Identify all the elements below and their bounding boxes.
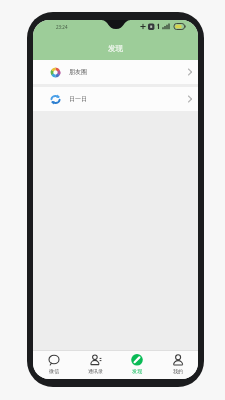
staticText: 23:24 <box>56 24 68 30</box>
staticText: 朋友圈 <box>69 68 87 76</box>
button[interactable]: 微信 <box>33 351 75 379</box>
staticText: 微信 <box>49 368 59 374</box>
staticText: 发现 <box>132 368 142 374</box>
staticText: 我的 <box>173 368 183 374</box>
button[interactable]: 我的 <box>157 351 198 379</box>
button[interactable]: 发现 <box>116 351 157 379</box>
staticText: 发现 <box>108 44 123 53</box>
staticText: 通讯录 <box>88 368 103 374</box>
button[interactable]: 通讯录 <box>75 351 116 379</box>
staticText: 日一日 <box>69 95 87 103</box>
button[interactable]: 日一日 <box>33 87 198 111</box>
button[interactable]: 朋友圈 <box>33 60 198 84</box>
